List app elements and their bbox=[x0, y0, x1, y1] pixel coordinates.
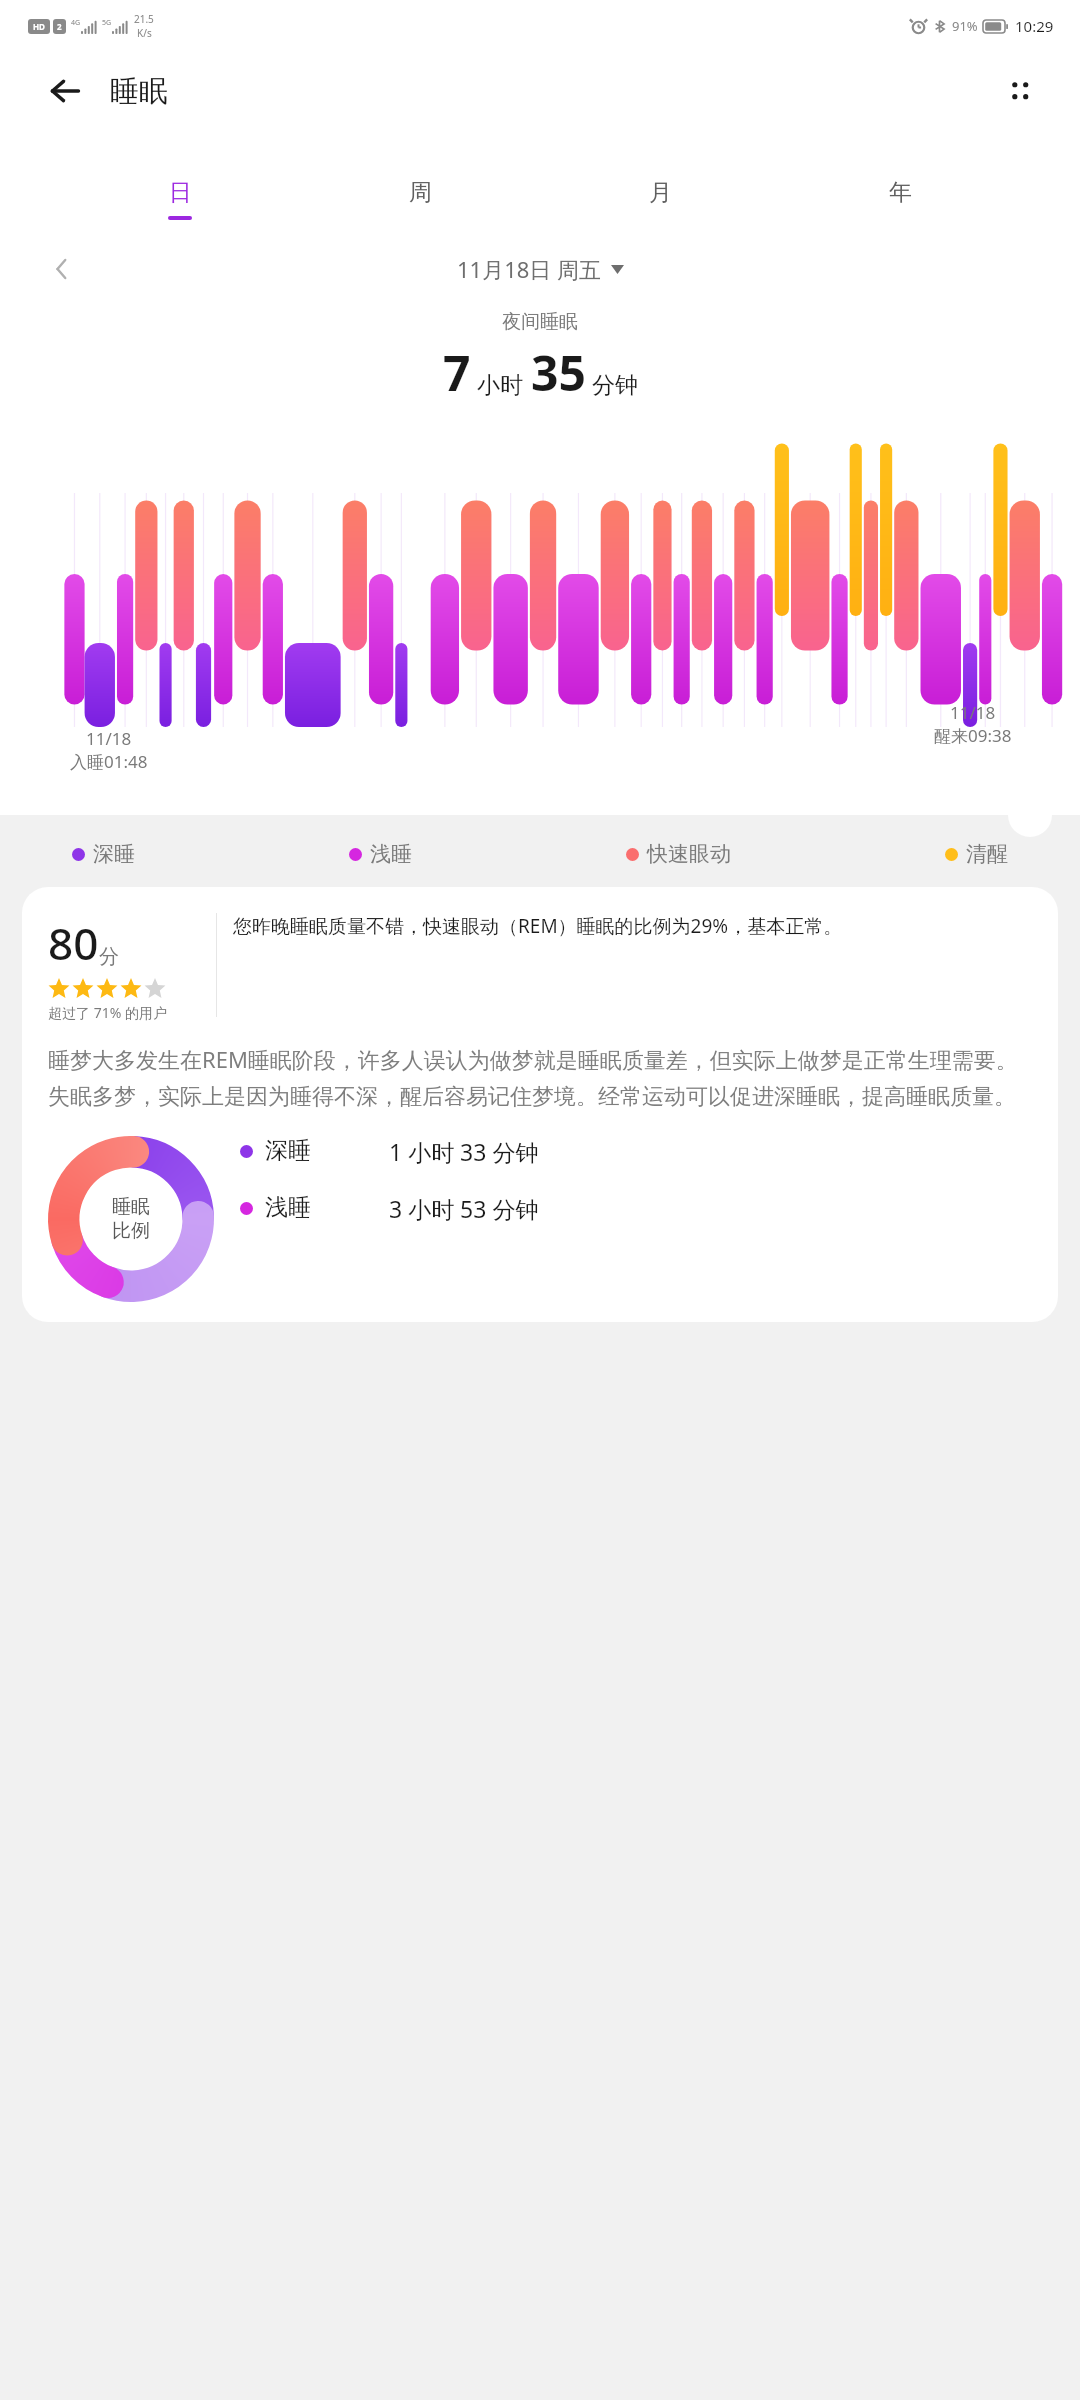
staticText: 3 小时 53 分钟 bbox=[389, 1193, 539, 1224]
staticText: HD bbox=[33, 21, 45, 32]
staticText: 11/18 bbox=[86, 727, 132, 750]
staticText: 睡眠 bbox=[110, 73, 168, 110]
staticText: 周 bbox=[409, 178, 432, 207]
staticText: 您昨晚睡眠质量不错，快速眼动（REM）睡眠的比例为29%，基本正常。 bbox=[233, 913, 843, 939]
staticText: 21.5 bbox=[134, 12, 154, 26]
staticText: 浅睡 bbox=[265, 1193, 375, 1222]
staticText: 分钟 bbox=[592, 371, 638, 400]
staticText: 比例 bbox=[112, 1219, 150, 1243]
staticText: 清醒 bbox=[966, 841, 1008, 867]
button[interactable]: More options bbox=[998, 69, 1042, 113]
staticText: 深睡 bbox=[93, 841, 135, 867]
button[interactable]: 11月18日 周五 bbox=[457, 254, 624, 284]
staticText: 小时 bbox=[477, 371, 523, 400]
staticText: 深睡 bbox=[265, 1136, 375, 1165]
staticText: K/s bbox=[137, 26, 152, 40]
staticText: 睡眠 bbox=[112, 1195, 150, 1219]
staticText: 入睡01:48 bbox=[70, 750, 148, 773]
button[interactable]: 日 bbox=[158, 176, 202, 222]
staticText: 2 bbox=[57, 21, 62, 32]
button[interactable]: Back bbox=[44, 70, 86, 112]
button[interactable]: Previous day bbox=[44, 252, 80, 286]
staticText: 快速眼动 bbox=[647, 841, 731, 867]
staticText: 1 小时 33 分钟 bbox=[389, 1136, 539, 1167]
staticText: 7 bbox=[443, 340, 471, 405]
staticText: 80 bbox=[48, 913, 99, 973]
staticText: 浅睡 bbox=[370, 841, 412, 867]
staticText: 91% bbox=[952, 17, 978, 35]
staticText: 月 bbox=[649, 178, 672, 207]
button[interactable]: More bbox=[1008, 793, 1052, 837]
button[interactable]: 年 bbox=[879, 176, 922, 222]
staticText: 分 bbox=[99, 944, 119, 969]
staticText: 35 bbox=[531, 340, 586, 405]
staticText: 年 bbox=[889, 178, 912, 207]
staticText: 夜间睡眠 bbox=[0, 310, 1080, 334]
button[interactable]: 月 bbox=[639, 176, 682, 222]
staticText: 11月18日 周五 bbox=[457, 254, 602, 284]
staticText: 10:29 bbox=[1015, 16, 1054, 36]
staticText: 睡梦大多发生在REM睡眠阶段，许多人误认为做梦就是睡眠质量差，但实际上做梦是正常… bbox=[48, 1044, 1032, 1110]
staticText: 11/18 bbox=[950, 701, 996, 724]
staticText: 4G bbox=[71, 18, 81, 28]
staticText: 醒来09:38 bbox=[934, 724, 1012, 747]
staticText: 超过了 71% 的用户 bbox=[48, 1003, 167, 1022]
staticText: 5G bbox=[102, 18, 112, 28]
staticText: 日 bbox=[169, 178, 192, 207]
button[interactable]: 周 bbox=[399, 176, 442, 222]
